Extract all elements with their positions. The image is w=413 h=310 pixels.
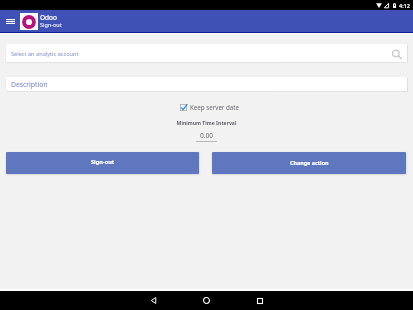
staticText: Odoo: [40, 13, 57, 22]
button[interactable]: Description: [6, 77, 407, 91]
button[interactable]: Open navigation menu: [1, 12, 19, 30]
staticText: Keep server date: [190, 103, 240, 111]
staticText: Change action: [290, 159, 329, 166]
button[interactable]: Select an analytic account: [6, 44, 407, 62]
button[interactable]: Back: [131, 291, 176, 310]
staticText: 0.00: [200, 131, 214, 140]
button[interactable]: Keep server date: [180, 103, 240, 111]
staticText: Minimum Time Interval: [0, 120, 413, 127]
staticText: Select an analytic account: [11, 50, 79, 58]
button[interactable]: Recent apps: [237, 291, 282, 310]
staticText: Sign-out: [40, 21, 62, 28]
staticText: Sign-out: [91, 158, 115, 166]
staticText: Description: [11, 80, 48, 89]
button[interactable]: Home: [184, 291, 229, 310]
button[interactable]: Sign-out: [6, 152, 199, 174]
staticText: 4:12: [399, 2, 410, 9]
button[interactable]: Change action: [212, 152, 406, 174]
